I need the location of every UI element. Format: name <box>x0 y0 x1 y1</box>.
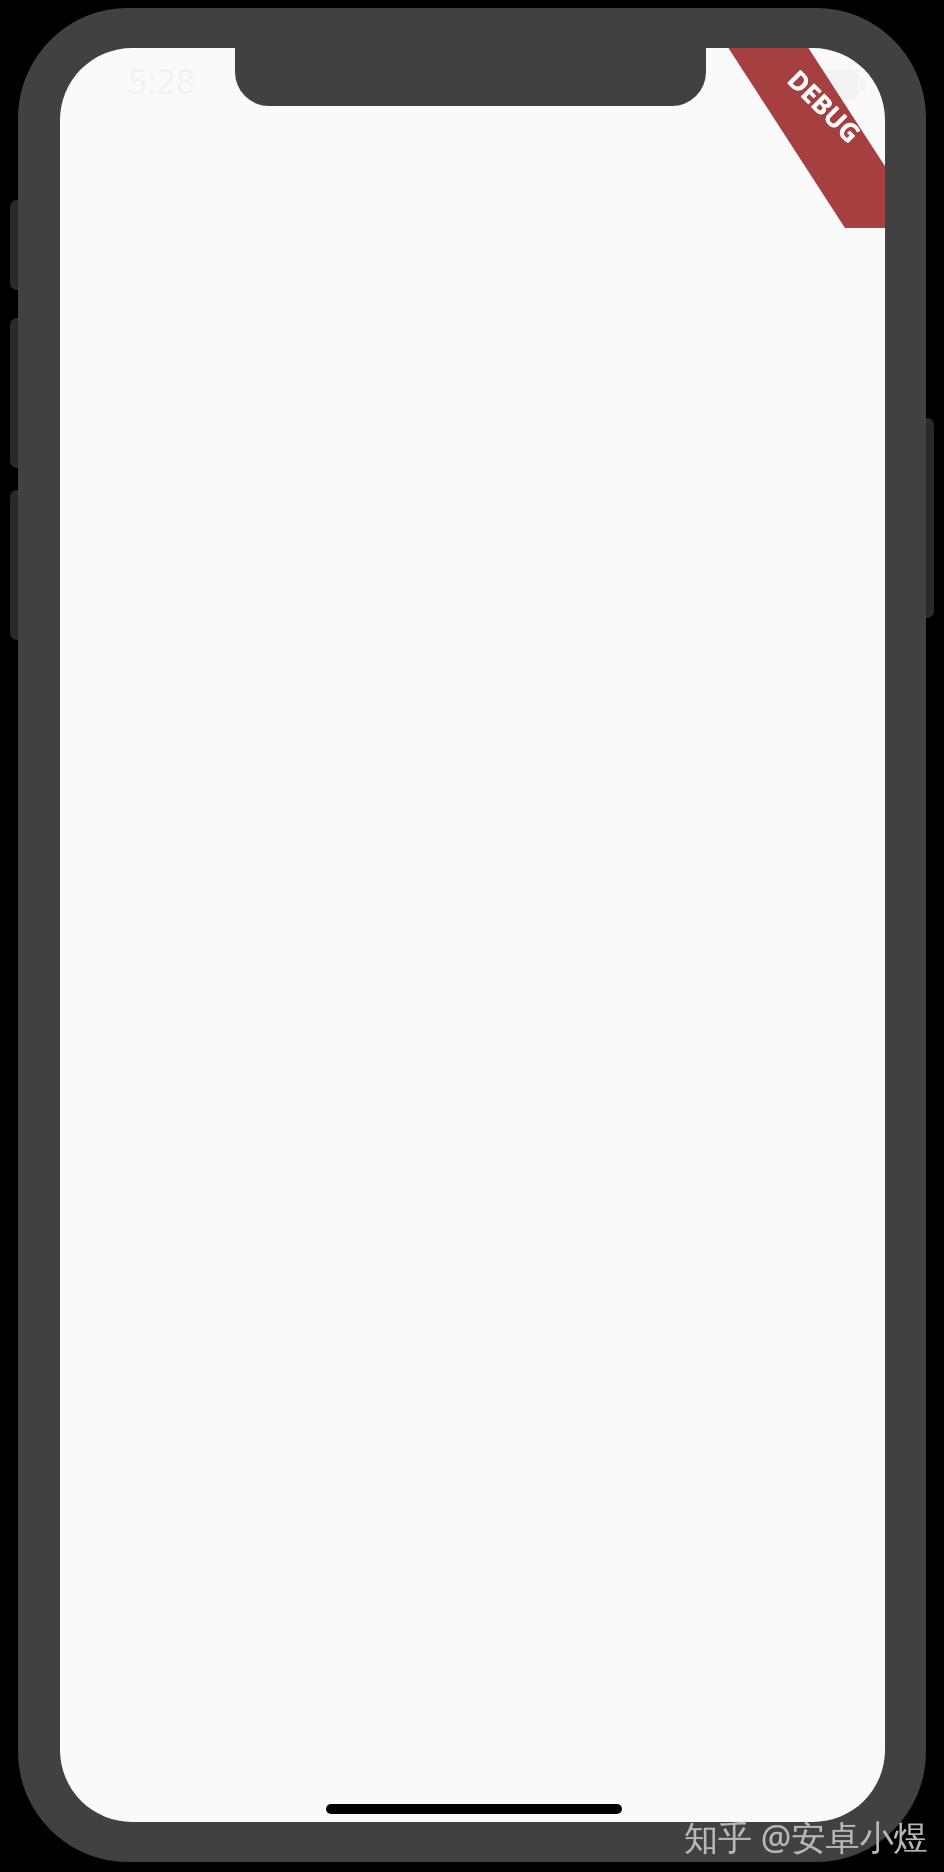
button[interactable]: Phone device mockup <box>0 0 944 1872</box>
